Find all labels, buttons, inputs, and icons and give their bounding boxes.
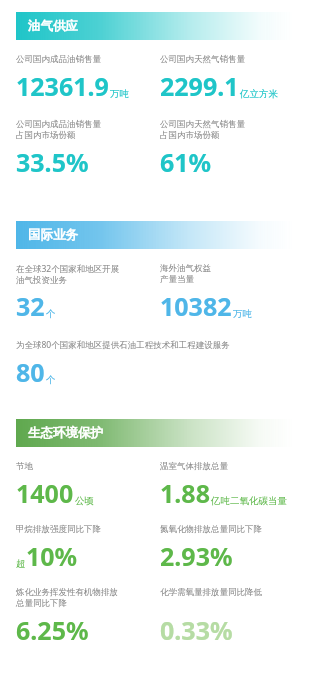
staticText: 亿吨二氧化碳当量	[211, 495, 287, 507]
staticText: 为全球80个国家和地区提供石油工程技术和工程建设服务	[16, 339, 230, 351]
button[interactable]: 为全球80个国家和地区提供石油工程技术和工程建设服务	[16, 339, 293, 389]
staticText: 节地	[16, 461, 33, 472]
button[interactable]: 公司国内成品油销售量 占国内市场份额	[16, 119, 160, 179]
staticText: 1.88	[160, 476, 210, 510]
staticText: 油气供应	[28, 18, 78, 34]
staticText: 个	[46, 308, 56, 320]
button[interactable]: 生态环境保护	[16, 419, 293, 447]
staticText: 超	[16, 558, 26, 570]
staticText: 个	[46, 374, 56, 386]
staticText: 炼化业务挥发性有机物排放 总量同比下降	[16, 587, 118, 609]
staticText: 公司国内成品油销售量 占国内市场份额	[16, 119, 101, 141]
staticText: 在全球32个国家和地区开展 油气投资业务	[16, 263, 120, 285]
staticText: 33.5%	[16, 145, 89, 179]
staticText: 生态环境保护	[28, 425, 103, 441]
staticText: 国际业务	[28, 227, 78, 243]
staticText: 80	[16, 355, 45, 389]
button[interactable]: 在全球32个国家和地区开展 油气投资业务	[16, 263, 160, 323]
button[interactable]: 温室气体排放总量	[160, 461, 293, 510]
staticText: 公司国内成品油销售量	[16, 54, 101, 65]
staticText: 0.33%	[160, 613, 233, 647]
staticText: 61%	[160, 145, 212, 179]
staticText: 2299.1	[160, 69, 239, 103]
staticText: 公司国内天然气销售量 占国内市场份额	[160, 119, 245, 141]
button[interactable]: 公司国内天然气销售量 占国内市场份额	[160, 119, 293, 179]
staticText: 海外油气权益 产量当量	[160, 263, 211, 285]
button[interactable]: 海外油气权益 产量当量	[160, 263, 293, 323]
button[interactable]: 化学需氧量排放量同比降低	[160, 587, 293, 647]
button[interactable]: 国际业务	[16, 221, 293, 249]
button[interactable]: 甲烷排放强度同比下降	[16, 524, 160, 573]
staticText: 10382	[160, 289, 232, 323]
staticText: 万吨	[110, 88, 129, 100]
staticText: 6.25%	[16, 613, 89, 647]
button[interactable]: 油气供应	[16, 12, 293, 40]
button[interactable]: 氮氧化物排放总量同比下降	[160, 524, 293, 573]
button[interactable]: 节地	[16, 461, 160, 510]
staticText: 化学需氧量排放量同比降低	[160, 587, 262, 609]
button[interactable]: 公司国内成品油销售量	[16, 54, 160, 103]
button[interactable]: 公司国内天然气销售量	[160, 54, 293, 103]
button[interactable]: 炼化业务挥发性有机物排放 总量同比下降	[16, 587, 160, 647]
staticText: 温室气体排放总量	[160, 461, 228, 472]
staticText: 32	[16, 289, 45, 323]
staticText: 氮氧化物排放总量同比下降	[160, 524, 262, 535]
staticText: 亿立方米	[240, 88, 278, 100]
staticText: 公司国内天然气销售量	[160, 54, 245, 65]
staticText: 公顷	[75, 495, 94, 507]
staticText: 万吨	[233, 308, 252, 320]
staticText: 10%	[26, 539, 78, 573]
staticText: 12361.9	[16, 69, 109, 103]
staticText: 2.93%	[160, 539, 233, 573]
staticText: 1400	[16, 476, 74, 510]
staticText: 甲烷排放强度同比下降	[16, 524, 101, 535]
